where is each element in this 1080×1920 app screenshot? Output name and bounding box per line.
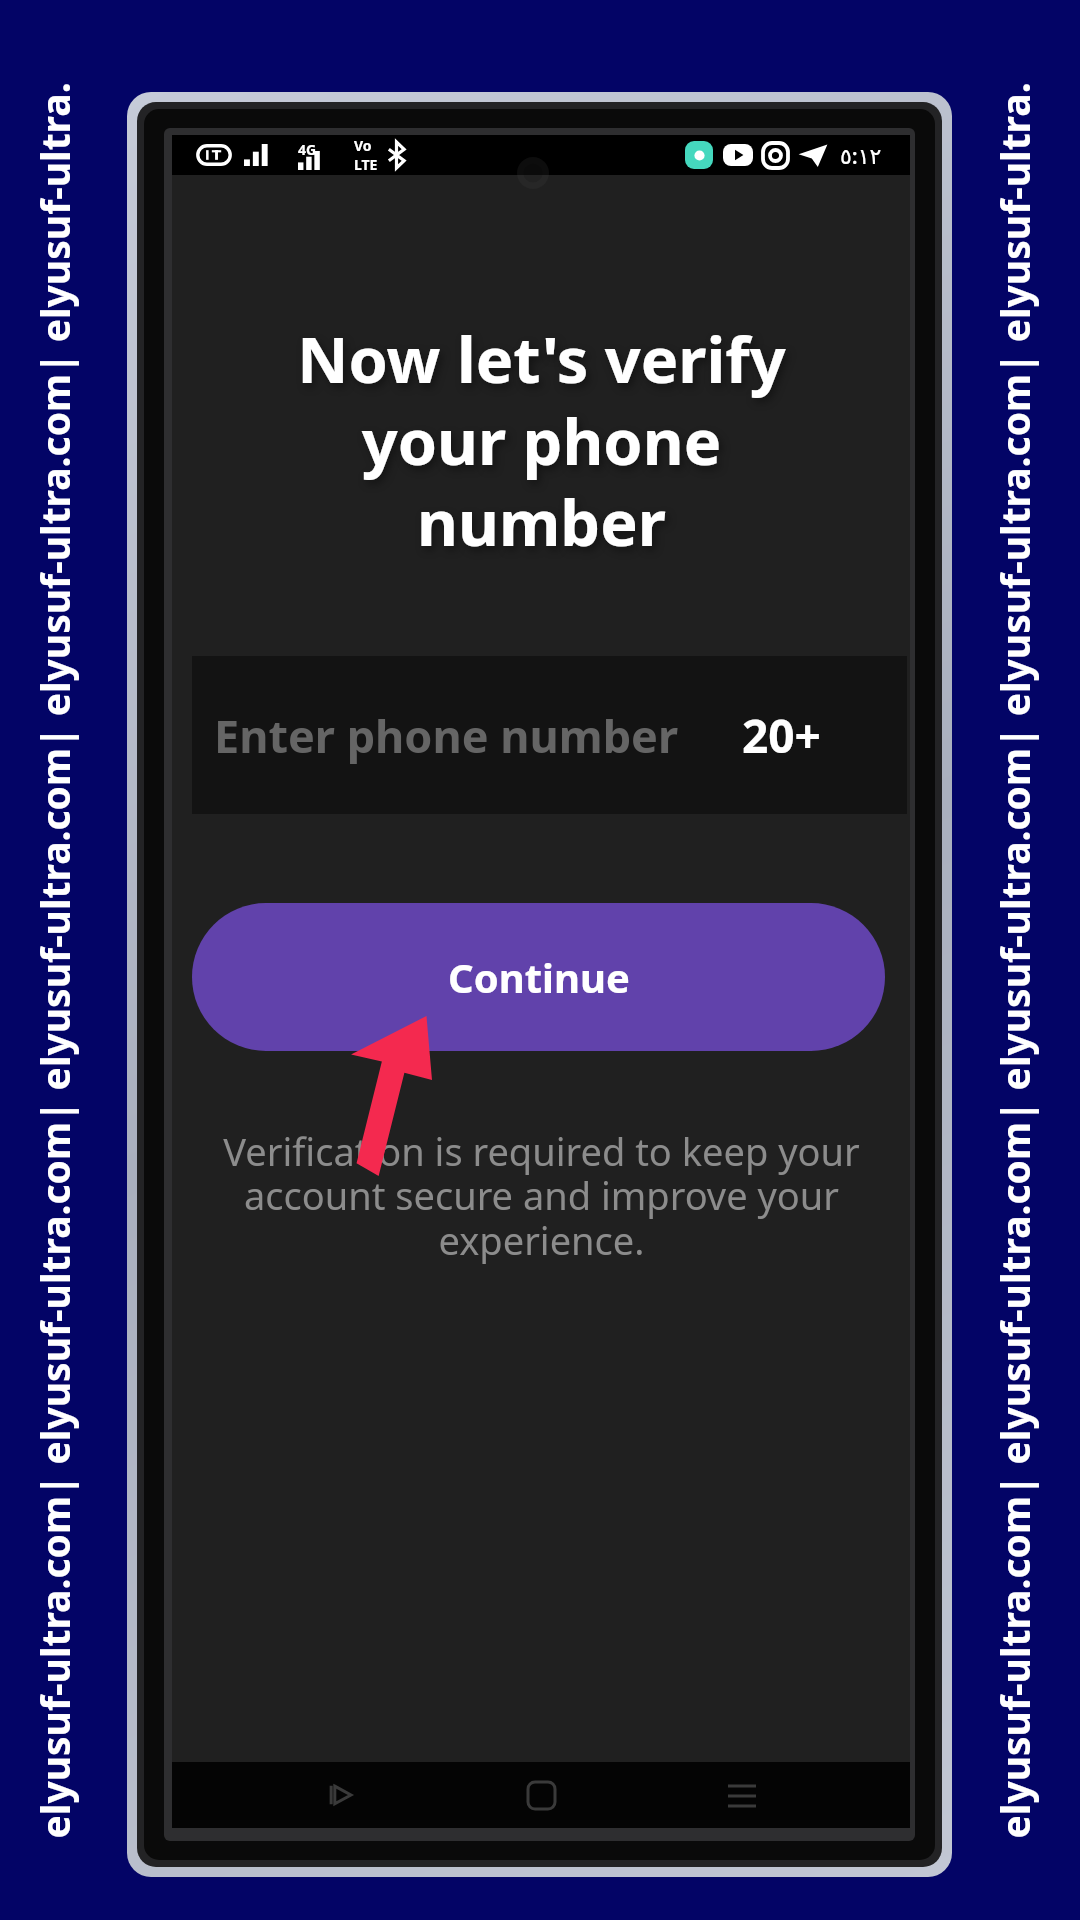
staticText: Now let's verify your phone number: [297, 316, 786, 564]
button[interactable]: Home: [508, 1762, 574, 1828]
staticText: LTE: [354, 155, 378, 174]
staticText: Enter phone number: [214, 705, 679, 766]
button[interactable]: Enter phone number: [192, 656, 907, 814]
staticText: 4G: [298, 140, 317, 159]
staticText: Continue: [448, 950, 630, 1004]
button[interactable]: Back: [307, 1762, 373, 1828]
staticText: Vo: [354, 136, 372, 155]
button[interactable]: Continue: [192, 903, 885, 1051]
staticText: 20+: [742, 704, 821, 767]
staticText: Verification is required to keep your ac…: [223, 1125, 860, 1266]
button[interactable]: Recent apps: [709, 1762, 775, 1828]
staticText: ٥:١٢: [840, 140, 882, 170]
